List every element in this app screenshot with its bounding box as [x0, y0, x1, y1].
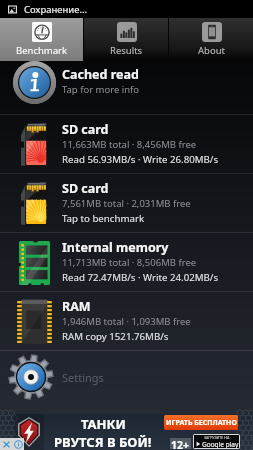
button[interactable]: Ad info [12, 438, 24, 450]
button[interactable]: Results [84, 18, 168, 61]
button[interactable]: Settings [0, 351, 253, 403]
button[interactable]: RAM [0, 292, 253, 351]
staticText: About [198, 44, 225, 57]
button[interactable]: Internal memory [0, 233, 253, 292]
button[interactable]: ИГРАТЬ БЕСПЛАТНО [164, 415, 238, 430]
button[interactable]: Cached read [0, 61, 253, 115]
button[interactable]: About [169, 18, 253, 61]
button[interactable]: SD card [0, 174, 253, 233]
button[interactable]: Close ad [0, 438, 12, 450]
staticText: РВУТСЯ В БОЙ! [54, 433, 152, 450]
staticText: Read 56.93MB/s · Write 26.80MB/s [62, 153, 219, 166]
button[interactable]: ТАНКИ [0, 414, 253, 450]
staticText: RAM copy 1521.76MB/s [62, 330, 169, 343]
staticText: ИГРАТЬ БЕСПЛАТНО [166, 418, 237, 428]
staticText: Tap for more info [62, 83, 140, 96]
staticText: Settings [62, 370, 104, 385]
staticText: SD card [62, 121, 109, 138]
staticText: Benchmark [16, 44, 68, 57]
staticText: Internal memory [62, 239, 169, 256]
staticText: Results [110, 44, 143, 57]
staticText: Сохранение... [24, 3, 88, 16]
staticText: Google play [202, 440, 239, 448]
button[interactable]: SD card [0, 115, 253, 174]
staticText: ЗАГРУЗИТЕ НА [204, 435, 230, 440]
staticText: SD card [62, 180, 109, 197]
staticText: 11,663MB total · 8,456MB free [62, 138, 197, 151]
staticText: 1,946MB total · 1,093MB free [62, 315, 191, 328]
staticText: 11,713MB total · 8,506MB free [62, 256, 197, 269]
staticText: 7,561MB total · 2,031MB free [62, 197, 191, 210]
staticText: Tap to benchmark [62, 212, 145, 225]
staticText: ТАНКИ [81, 415, 126, 433]
staticText: 12+ [171, 438, 190, 449]
button[interactable]: Benchmark [0, 18, 83, 61]
staticText: Cached read [62, 66, 139, 83]
staticText: RAM [62, 298, 91, 315]
staticText: Read 72.47MB/s · Write 24.02MB/s [62, 271, 219, 284]
